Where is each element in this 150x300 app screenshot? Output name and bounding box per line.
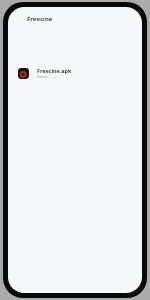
staticText: Freecine.apk	[37, 67, 72, 74]
staticText: Freecine	[37, 75, 48, 79]
staticText: Freecine	[27, 15, 53, 23]
staticText: 12 MB	[49, 76, 57, 79]
button[interactable]: Freecine.apk	[8, 65, 142, 81]
